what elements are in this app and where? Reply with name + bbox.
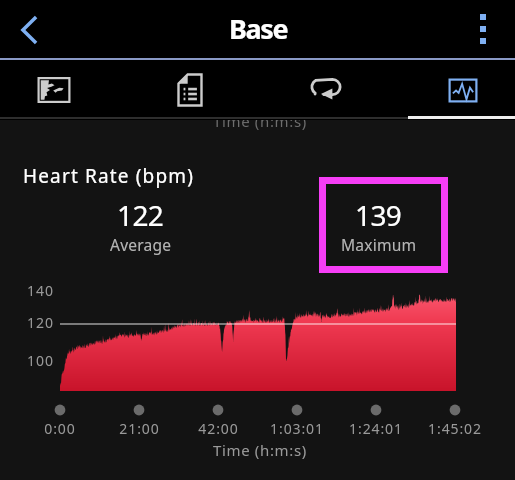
staticText: 0:00	[44, 419, 76, 438]
button[interactable]: 139	[326, 184, 441, 266]
staticText: 1:24:01	[349, 419, 403, 438]
staticText: 21:00	[119, 419, 160, 438]
staticText: Heart Rate (bpm)	[23, 163, 195, 189]
button[interactable]: Map	[0, 60, 122, 120]
staticText: 100	[27, 351, 55, 370]
staticText: 1:03:01	[270, 419, 324, 438]
staticText: Maximum	[341, 234, 417, 255]
staticText: 122	[117, 196, 164, 234]
staticText: 139	[355, 196, 402, 234]
button[interactable]: More options	[461, 8, 505, 52]
button[interactable]: Details	[122, 60, 258, 120]
button[interactable]: Charts	[395, 60, 515, 120]
staticText: 120	[27, 313, 55, 332]
button[interactable]: Laps	[258, 60, 394, 120]
staticText: 42:00	[198, 419, 239, 438]
staticText: 140	[27, 281, 55, 300]
staticText: Time (h:m:s)	[213, 440, 307, 460]
button[interactable]: Back	[5, 6, 53, 54]
staticText: Average	[110, 234, 172, 255]
staticText: Base	[229, 10, 288, 47]
staticText: 1:45:02	[428, 419, 482, 438]
staticText: Time (h:m:s)	[213, 111, 307, 131]
